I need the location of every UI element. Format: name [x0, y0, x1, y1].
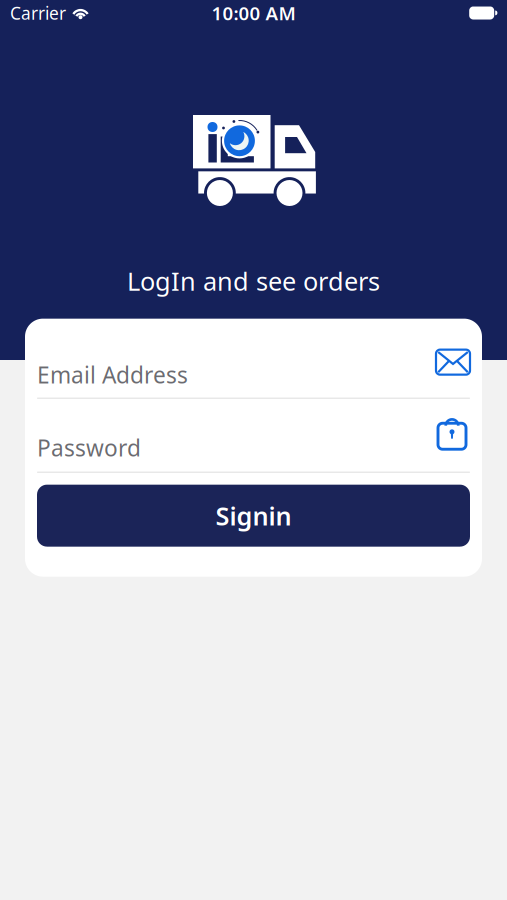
staticText: Signin: [215, 499, 291, 532]
staticText: Email Address: [37, 360, 188, 390]
staticText: LogIn and see orders: [127, 264, 380, 298]
staticText: Password: [37, 433, 141, 463]
staticText: Carrier: [10, 1, 66, 24]
button[interactable]: Signin: [37, 485, 470, 547]
staticText: 10:00 AM: [211, 1, 295, 25]
